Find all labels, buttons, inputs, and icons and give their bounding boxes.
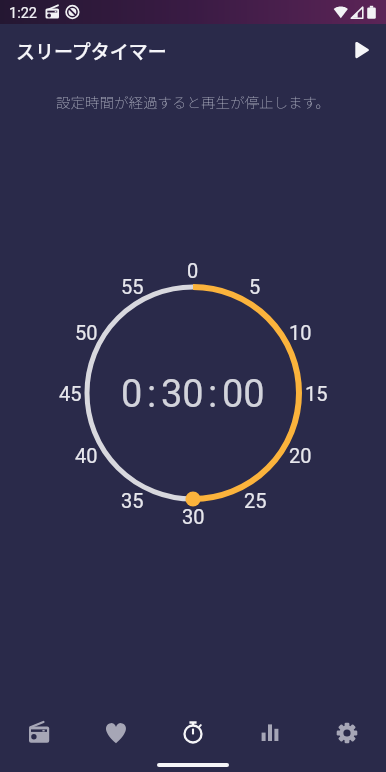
staticText: 1:22: [9, 5, 37, 22]
button[interactable]: [338, 24, 386, 72]
staticText: 00: [222, 372, 265, 417]
staticText: 20: [289, 444, 312, 466]
staticText: 55: [121, 275, 144, 297]
staticText: 50: [75, 321, 98, 343]
staticText: 40: [75, 444, 98, 466]
button[interactable]: [77, 710, 154, 772]
staticText: 設定時間が経過すると再生が停止します。: [0, 91, 386, 112]
staticText: 25: [244, 489, 267, 511]
staticText: 30: [161, 372, 204, 417]
staticText: 5: [249, 275, 261, 297]
button[interactable]: [154, 710, 231, 772]
staticText: 45: [59, 382, 82, 404]
staticText: 15: [305, 382, 328, 404]
staticText: 0: [121, 372, 143, 417]
staticText: 35: [121, 489, 144, 511]
staticText: 0: [187, 259, 199, 281]
button[interactable]: [0, 710, 77, 772]
staticText: 10: [289, 321, 312, 343]
staticText: スリープタイマー: [16, 37, 167, 65]
staticText: :: [208, 372, 218, 417]
button[interactable]: [231, 710, 308, 772]
staticText: 30: [182, 505, 205, 527]
button[interactable]: [308, 710, 385, 772]
staticText: :: [147, 372, 157, 417]
